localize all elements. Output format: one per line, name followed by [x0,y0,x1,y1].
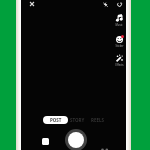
button[interactable]: STORY [69,116,85,124]
staticText: Sticker [115,44,124,48]
staticText: Effects [115,63,124,67]
button[interactable]: REELS [89,116,105,124]
button[interactable]: Gallery [42,138,49,145]
button[interactable]: Flash [99,0,111,10]
button[interactable]: More tools [100,146,110,150]
button[interactable]: Switch camera [113,0,125,10]
button[interactable]: Stickers [111,36,127,48]
staticText: Music [115,23,123,27]
staticText: POST [50,117,62,123]
staticText: REELS [91,117,104,123]
button[interactable]: POST [43,116,68,124]
button[interactable]: Close [26,0,38,10]
button[interactable]: Capture [65,129,87,150]
button[interactable]: Music [111,15,127,27]
staticText: STORY [70,117,85,123]
button[interactable]: Effects [111,55,127,67]
